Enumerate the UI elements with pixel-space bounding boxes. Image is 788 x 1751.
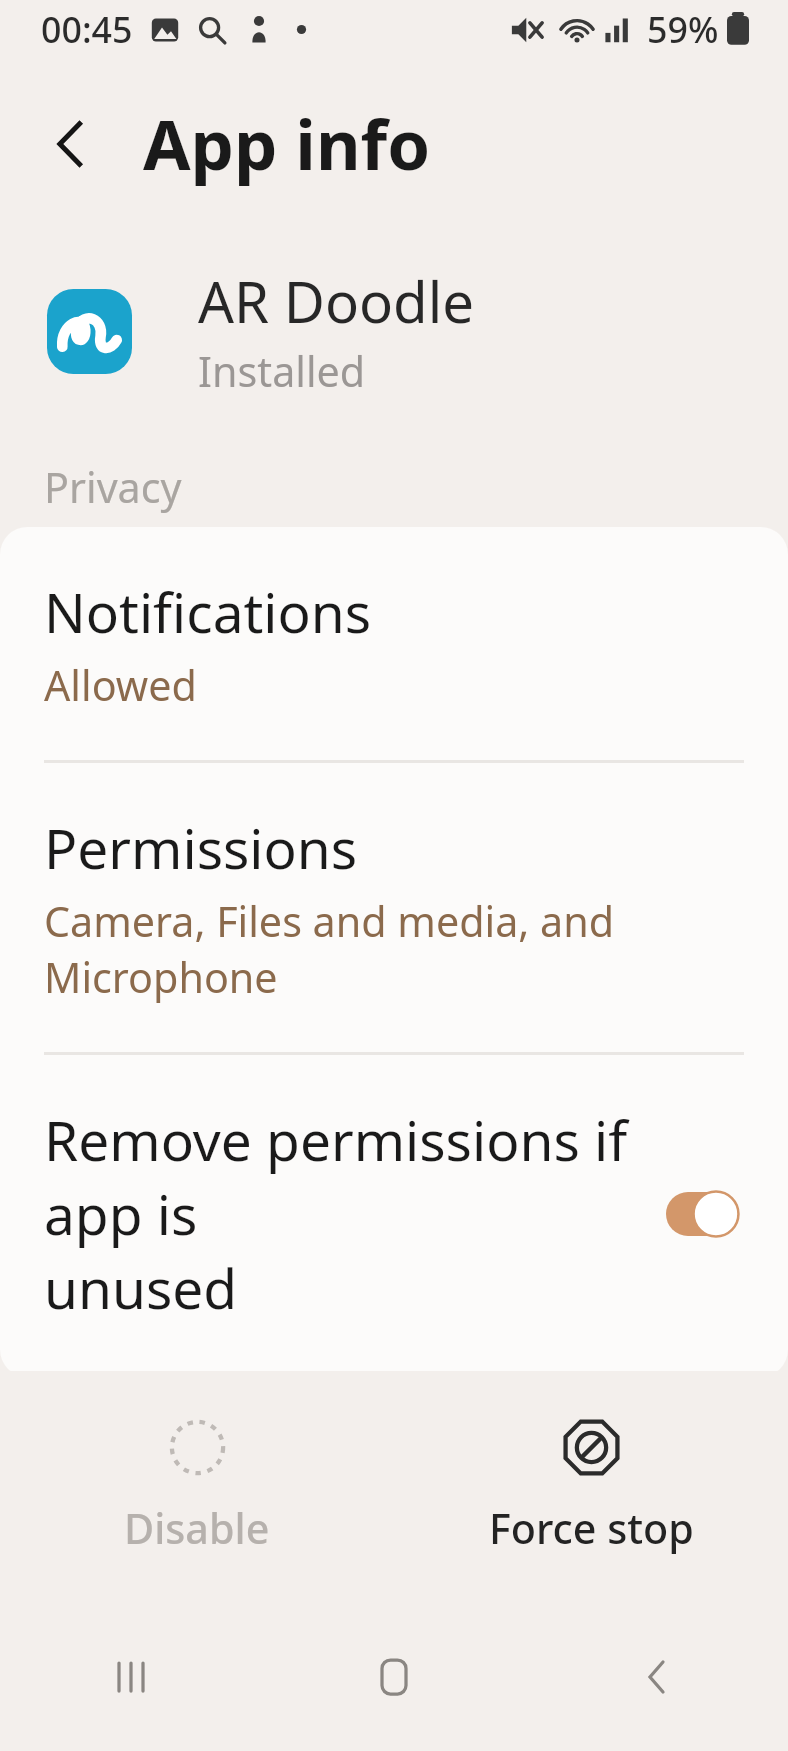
- staticText: Disable: [124, 1500, 270, 1556]
- staticText: Camera, Files and media, and Microphone: [44, 893, 744, 1005]
- button[interactable]: Disable: [0, 1371, 394, 1602]
- staticText: Set as default: [44, 1529, 394, 1604]
- button[interactable]: Remove permissions if app is unused: [0, 1055, 788, 1377]
- staticText: AR Doodle: [198, 263, 475, 340]
- button[interactable]: Notifications: [0, 527, 788, 760]
- staticText: Privacy: [44, 459, 182, 515]
- staticText: Notifications: [44, 574, 372, 649]
- button[interactable]: Set as default: [0, 1482, 788, 1715]
- button[interactable]: Home: [262, 1602, 525, 1751]
- staticText: Remove permissions if app is unused: [44, 1102, 644, 1325]
- button[interactable]: Recents: [0, 1602, 262, 1751]
- staticText: Defaults: [44, 1414, 206, 1470]
- button[interactable]: Back: [525, 1602, 788, 1751]
- staticText: Allowed: [44, 657, 197, 713]
- button[interactable]: Back: [19, 91, 124, 196]
- staticText: 59%: [647, 5, 719, 54]
- staticText: App info: [143, 97, 431, 191]
- staticText: Installed: [198, 343, 366, 399]
- button[interactable]: AR Doodle: [0, 229, 788, 433]
- staticText: In this app: [44, 1612, 250, 1668]
- staticText: Force stop: [489, 1500, 694, 1556]
- button[interactable]: Force stop: [394, 1371, 788, 1602]
- staticText: 00:45: [41, 5, 133, 54]
- button[interactable]: Permissions: [0, 763, 788, 1052]
- staticText: Permissions: [44, 810, 358, 885]
